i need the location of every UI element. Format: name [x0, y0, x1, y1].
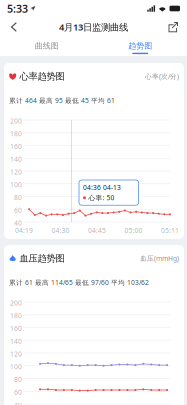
staticText: 心率(次/分): [145, 72, 179, 81]
staticText: 血压(mmHg): [140, 254, 179, 263]
staticText: 120: [10, 168, 22, 176]
staticText: 140: [10, 337, 22, 346]
staticText: 4月13日监测曲线: [59, 21, 128, 33]
button[interactable]: Back: [3, 17, 25, 37]
staticText: 60: [14, 206, 22, 215]
staticText: 120: [10, 350, 22, 358]
staticText: 04:30: [51, 226, 69, 235]
staticText: 05:00: [124, 226, 142, 235]
staticText: 5:33: [7, 1, 28, 16]
staticText: 曲线图: [35, 41, 59, 51]
staticText: 心率趋势图: [19, 71, 64, 82]
staticText: 160: [10, 324, 22, 333]
staticText: 160: [10, 142, 22, 151]
staticText: 200: [10, 299, 22, 307]
staticText: 100: [10, 362, 22, 371]
staticText: 140: [10, 155, 22, 164]
staticText: 04:19: [15, 226, 33, 235]
staticText: 40: [14, 401, 22, 405]
staticText: 180: [10, 129, 22, 138]
staticText: 100: [10, 180, 22, 189]
staticText: 04:36 04-13: [83, 183, 121, 192]
staticText: 80: [14, 193, 22, 202]
button[interactable]: 曲线图: [0, 37, 93, 56]
staticText: 60: [14, 388, 22, 397]
button[interactable]: 趋势图: [93, 37, 187, 56]
button[interactable]: Share: [162, 17, 184, 37]
staticText: 累计 61 最高 114/65 最低 97/60 平均 103/62: [9, 278, 149, 287]
staticText: 40: [14, 219, 22, 227]
staticText: 05:11: [161, 226, 179, 235]
staticText: 心率: 50: [88, 193, 114, 202]
staticText: 趋势图: [128, 41, 152, 51]
staticText: 180: [10, 311, 22, 320]
staticText: 血压趋势图: [19, 253, 64, 264]
staticText: 04:45: [88, 226, 106, 235]
staticText: 80: [14, 375, 22, 384]
staticText: 200: [10, 117, 22, 125]
staticText: 累计 464 最高 95 最低 45 平均 61: [9, 96, 115, 105]
